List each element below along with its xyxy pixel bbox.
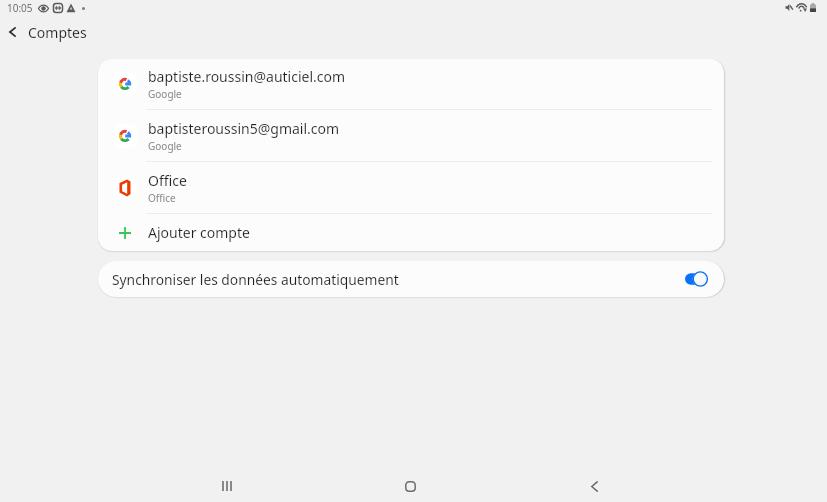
staticText: Google [148, 139, 182, 153]
staticText: 10:05 [7, 1, 33, 15]
staticText: Comptes [28, 23, 87, 42]
staticText: Office [148, 191, 176, 205]
button[interactable]: Recent apps [205, 470, 248, 502]
staticText: baptisteroussin5@gmail.com [148, 119, 340, 138]
staticText: Office [148, 171, 187, 190]
staticText: Google [148, 87, 182, 101]
button[interactable]: Back [573, 470, 616, 502]
staticText: baptiste.roussin@auticiel.com [148, 67, 346, 86]
button[interactable]: Office [98, 162, 724, 213]
button[interactable]: Home [389, 470, 432, 502]
button[interactable]: baptiste.roussin@auticiel.com [98, 59, 724, 109]
staticText: Synchroniser les données automatiquement [112, 270, 399, 289]
button[interactable]: Back [0, 17, 25, 47]
button[interactable]: Ajouter compte [98, 214, 724, 251]
button[interactable]: baptisteroussin5@gmail.com [98, 110, 724, 161]
staticText: Ajouter compte [148, 223, 250, 242]
button[interactable]: Synchroniser les données automatiquement [98, 261, 724, 297]
